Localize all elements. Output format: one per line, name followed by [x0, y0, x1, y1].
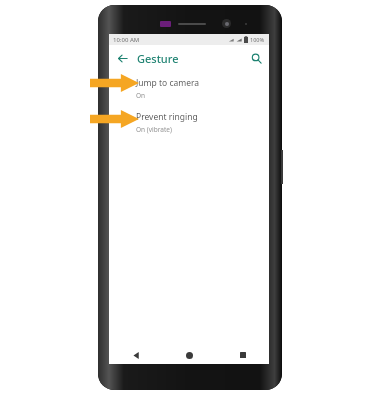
button[interactable]: Jump to camera	[109, 71, 269, 105]
staticText: Prevent ringing	[136, 111, 198, 123]
button[interactable]: Back	[109, 346, 163, 364]
button[interactable]: Search	[243, 45, 269, 71]
button[interactable]: Recent apps	[216, 346, 269, 364]
staticText: On (vibrate)	[136, 125, 172, 134]
staticText: 10:00 AM	[113, 36, 140, 44]
button[interactable]: Home	[163, 346, 216, 364]
button[interactable]: Navigate up	[109, 45, 135, 71]
button[interactable]: Prevent ringing	[109, 105, 269, 139]
staticText: 100%	[250, 36, 265, 43]
staticText: On	[136, 91, 146, 100]
staticText: Jump to camera	[136, 77, 200, 89]
staticText: Gesture	[137, 51, 179, 66]
